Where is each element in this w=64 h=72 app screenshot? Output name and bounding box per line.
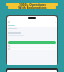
button[interactable] (8, 45, 56, 47)
button[interactable] (8, 48, 56, 50)
staticText: 1000+ Questions (19, 3, 46, 6)
staticText: With Explanations (18, 6, 47, 9)
button[interactable] (8, 41, 56, 44)
